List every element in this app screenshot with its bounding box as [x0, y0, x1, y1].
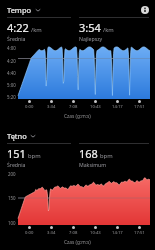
staticText: Najlepszy — [79, 35, 103, 42]
staticText: Czas (g:m:s) — [64, 113, 91, 120]
staticText: 10:43 — [90, 230, 101, 236]
staticText: 5:20 — [7, 94, 16, 99]
button[interactable]: 3:54 — [79, 17, 149, 42]
staticText: 10:43 — [90, 104, 101, 110]
button[interactable]: 151 — [7, 143, 71, 168]
staticText: 168 — [79, 146, 98, 161]
staticText: 4:40 — [7, 70, 16, 75]
staticText: /km — [103, 26, 114, 34]
staticText: 4:00 — [7, 45, 16, 50]
staticText: 5:00 — [7, 82, 16, 87]
staticText: Średnia — [7, 161, 26, 168]
button[interactable]: Informacje — [138, 3, 151, 16]
staticText: 200 — [8, 171, 16, 176]
button[interactable]: Tempo — [7, 5, 41, 15]
staticText: 14:17 — [112, 104, 123, 110]
staticText: Tętno — [7, 131, 27, 141]
staticText: bpm — [100, 152, 113, 160]
staticText: 3:54 — [79, 20, 101, 35]
staticText: 17:51 — [134, 230, 145, 236]
staticText: 14:17 — [112, 230, 123, 236]
staticText: 0:00 — [25, 230, 34, 236]
staticText: 4:22 — [7, 20, 29, 35]
staticText: bpm — [28, 152, 41, 160]
staticText: 17:51 — [134, 104, 145, 110]
staticText: Średnia — [7, 35, 26, 42]
staticText: /km — [31, 26, 42, 34]
staticText: 151 — [7, 146, 26, 161]
staticText: 0:00 — [25, 104, 34, 110]
staticText: 3:34 — [47, 230, 56, 236]
staticText: 3:34 — [47, 104, 56, 110]
staticText: 150 — [8, 195, 16, 200]
staticText: 100 — [8, 220, 16, 225]
staticText: 7:08 — [69, 230, 78, 236]
staticText: Tempo — [7, 5, 32, 15]
staticText: Maksimum — [79, 161, 107, 168]
button[interactable]: Tętno — [7, 131, 36, 141]
staticText: 4:20 — [7, 58, 16, 63]
staticText: Czas (g:m:s) — [64, 239, 91, 246]
button[interactable]: 168 — [79, 143, 149, 168]
staticText: 7:08 — [69, 104, 78, 110]
button[interactable]: 4:22 — [7, 17, 71, 42]
